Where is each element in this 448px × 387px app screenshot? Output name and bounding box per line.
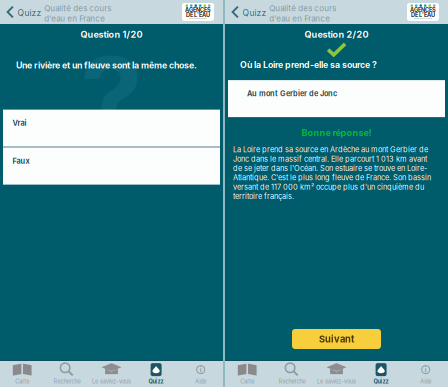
staticText: Quizz [17, 8, 41, 18]
staticText: AGENCES [185, 7, 211, 13]
staticText: DE L'EAU [411, 12, 435, 18]
staticText: Recherche [278, 378, 305, 385]
staticText: Suivant [319, 333, 354, 345]
staticText: Carte [240, 378, 254, 385]
staticText: Aide [195, 378, 206, 385]
staticText: La Loire prend sa source en Ardèche au m… [233, 145, 431, 201]
button[interactable]: Carte [0, 361, 45, 387]
staticText: Faux [12, 157, 29, 165]
staticText: Question 1/20 [80, 29, 142, 40]
staticText: Question 2/20 [304, 29, 368, 40]
button[interactable]: Le saviez-vous [89, 361, 134, 387]
staticText: Bonne réponse! [301, 127, 371, 138]
staticText: Aide [420, 378, 431, 385]
button[interactable]: Recherche [270, 361, 314, 387]
button[interactable]: i [403, 361, 448, 387]
button[interactable]: Quizz [134, 361, 178, 387]
staticText: Où la Loire prend-elle sa source ? [240, 59, 377, 70]
button[interactable]: Au mont Gerbier de Jonc [228, 80, 445, 117]
staticText: Une rivière et un fleuve sont la même ch… [16, 60, 197, 71]
staticText: Quizz [242, 8, 266, 18]
staticText: DE L'EAU [186, 12, 210, 18]
staticText: AGENCES [410, 7, 436, 13]
staticText: Qualité des cours d'eau en France [44, 3, 111, 23]
staticText: ? [80, 30, 143, 165]
staticText: Quizz [374, 378, 389, 385]
staticText: Le saviez-vous [317, 378, 356, 385]
staticText: i [200, 365, 202, 374]
staticText: Le saviez-vous [92, 378, 131, 385]
button[interactable]: i [178, 361, 223, 387]
button[interactable]: Recherche [45, 361, 89, 387]
button[interactable]: Quizz [359, 361, 403, 387]
staticText: Au mont Gerbier de Jonc [247, 89, 337, 98]
button[interactable]: Faux [3, 148, 220, 185]
button[interactable]: Quizz [225, 0, 269, 24]
staticText: Carte [15, 378, 29, 385]
button[interactable]: Suivant [292, 329, 381, 349]
button[interactable]: Le saviez-vous [314, 361, 359, 387]
staticText: Vrai [12, 119, 26, 127]
staticText: Recherche [53, 378, 80, 385]
staticText: Qualité des cours d'eau en France [269, 3, 336, 23]
button[interactable]: Quizz [0, 0, 44, 24]
staticText: Quizz [149, 378, 164, 385]
button[interactable]: Carte [225, 361, 270, 387]
button[interactable]: Vrai [3, 110, 220, 147]
staticText: i [425, 365, 427, 374]
